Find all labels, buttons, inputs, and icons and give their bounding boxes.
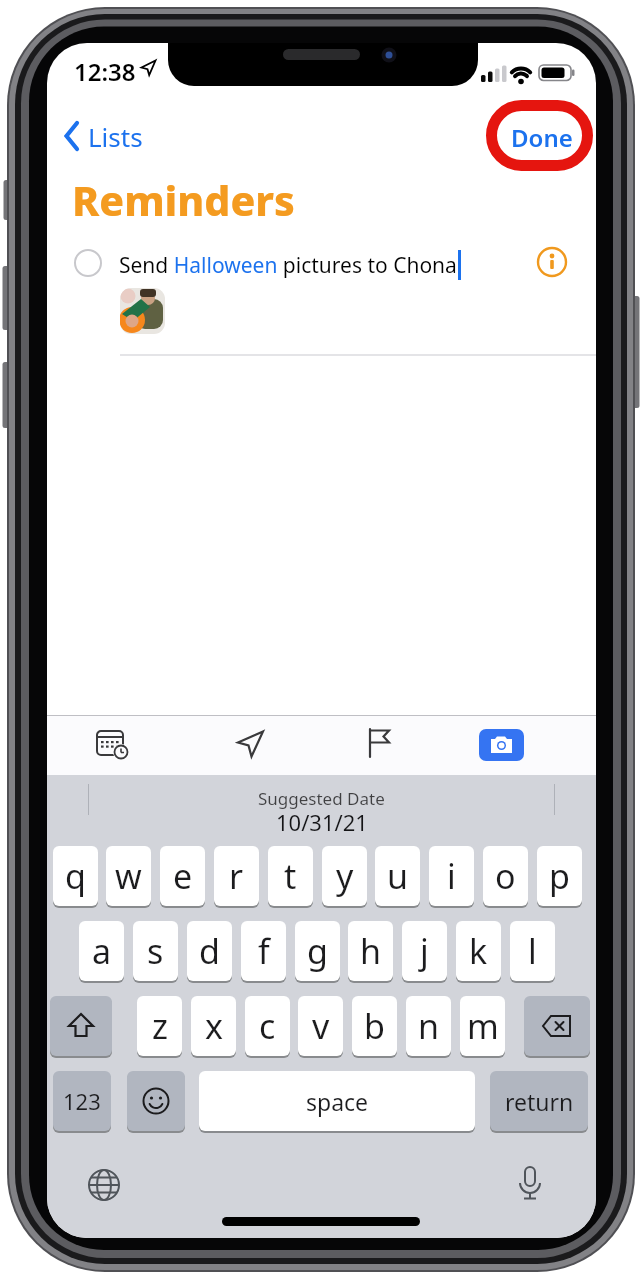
staticText: e xyxy=(173,853,193,899)
button[interactable]: n xyxy=(406,996,451,1056)
button[interactable]: p xyxy=(537,846,582,906)
button[interactable]: x xyxy=(191,996,236,1056)
staticText: Suggested Date xyxy=(258,787,385,810)
staticText: h xyxy=(360,928,382,974)
button[interactable]: y xyxy=(322,846,367,906)
button[interactable]: Suggested Date xyxy=(47,775,596,846)
staticText: o xyxy=(495,853,516,899)
staticText: k xyxy=(469,928,488,974)
button[interactable]: u xyxy=(375,846,420,906)
staticText: Reminders xyxy=(72,172,295,228)
button[interactable]: a xyxy=(79,921,124,981)
button[interactable] xyxy=(95,727,131,761)
staticText: z xyxy=(152,1003,168,1049)
staticText: q xyxy=(65,853,86,899)
button[interactable] xyxy=(127,1071,185,1131)
staticText: n xyxy=(418,1003,440,1049)
button[interactable] xyxy=(479,729,524,761)
button[interactable]: m xyxy=(460,996,505,1056)
button[interactable]: return xyxy=(490,1071,588,1131)
staticText: m xyxy=(467,1003,499,1049)
staticText: t xyxy=(284,853,297,899)
button[interactable]: i xyxy=(429,846,474,906)
button[interactable]: Done xyxy=(503,118,581,156)
button[interactable]: t xyxy=(268,846,313,906)
staticText: r xyxy=(229,853,244,899)
staticText: return xyxy=(505,1086,574,1117)
staticText: c xyxy=(259,1003,276,1049)
staticText: d xyxy=(199,928,220,974)
staticText: 123 xyxy=(63,1086,101,1116)
button[interactable]: e xyxy=(160,846,205,906)
button[interactable] xyxy=(235,729,267,761)
staticText: g xyxy=(307,928,328,974)
staticText: Send Halloween pictures to Chona xyxy=(119,251,457,280)
staticText: u xyxy=(387,853,409,899)
staticText: l xyxy=(528,928,537,974)
button[interactable]: k xyxy=(456,921,501,981)
button[interactable]: s xyxy=(133,921,178,981)
staticText: p xyxy=(549,853,570,899)
staticText: Lists xyxy=(88,119,143,154)
staticText: y xyxy=(336,853,354,899)
button[interactable]: h xyxy=(348,921,393,981)
button[interactable]: z xyxy=(137,996,182,1056)
staticText: v xyxy=(312,1003,330,1049)
staticText: j xyxy=(420,928,429,974)
staticText: 12:38 xyxy=(74,55,136,88)
staticText: Done xyxy=(511,121,573,154)
button[interactable] xyxy=(512,1165,548,1205)
button[interactable]: w xyxy=(106,846,151,906)
button[interactable]: r xyxy=(214,846,259,906)
button[interactable]: o xyxy=(483,846,528,906)
staticText: w xyxy=(115,853,142,899)
button[interactable]: Lists xyxy=(59,117,179,157)
staticText: a xyxy=(92,928,112,974)
button[interactable] xyxy=(365,727,395,761)
button[interactable] xyxy=(524,996,590,1056)
button[interactable] xyxy=(120,288,165,334)
button[interactable]: b xyxy=(352,996,397,1056)
staticText: space xyxy=(306,1086,369,1117)
button[interactable]: Send Halloween pictures to Chona xyxy=(67,241,527,285)
staticText: s xyxy=(147,928,164,974)
button[interactable] xyxy=(535,245,569,279)
button[interactable] xyxy=(86,1167,122,1203)
button[interactable]: space xyxy=(199,1071,475,1131)
button[interactable] xyxy=(50,996,112,1056)
button[interactable]: l xyxy=(510,921,555,981)
staticText: x xyxy=(205,1003,223,1049)
staticText: 10/31/21 xyxy=(276,807,368,837)
staticText: f xyxy=(258,928,270,974)
button[interactable]: v xyxy=(298,996,343,1056)
button[interactable]: c xyxy=(245,996,290,1056)
button[interactable]: f xyxy=(241,921,286,981)
button[interactable]: 123 xyxy=(53,1071,111,1131)
staticText: b xyxy=(364,1003,385,1049)
button[interactable]: j xyxy=(402,921,447,981)
staticText: i xyxy=(447,853,456,899)
button[interactable]: q xyxy=(53,846,98,906)
button[interactable]: d xyxy=(187,921,232,981)
button[interactable]: g xyxy=(295,921,340,981)
